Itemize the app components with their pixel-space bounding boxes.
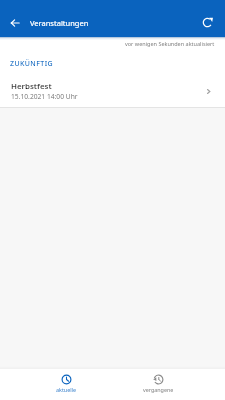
staticText: ZUKÜNFTIG [10,59,54,69]
button[interactable]: vergangene [112,369,205,400]
staticText: Veranstaltungen [30,18,89,28]
button[interactable]: Zurück [5,13,24,32]
staticText: vor wenigen Sekunden aktualisiert [125,40,215,47]
button[interactable]: Aktualisieren [198,13,217,32]
staticText: aktuelle [56,386,77,393]
staticText: 15.10.2021 14:00 Uhr [11,92,78,101]
staticText: vergangene [143,386,174,393]
button[interactable]: aktuelle [20,369,113,400]
staticText: Herbstfest [11,81,52,92]
button[interactable]: Herbstfest [0,79,225,103]
